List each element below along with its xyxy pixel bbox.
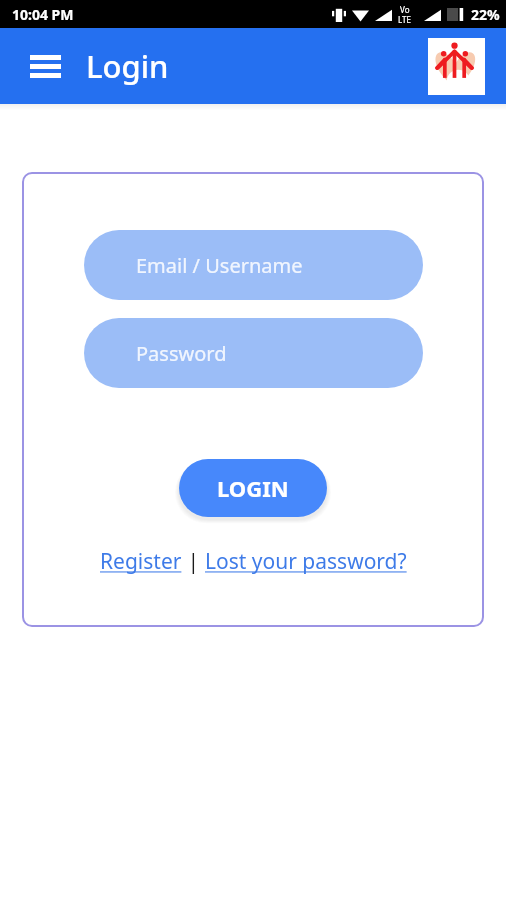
staticText: 22%	[471, 5, 500, 24]
staticText: |	[182, 547, 205, 576]
button[interactable]: LOGIN	[179, 459, 327, 517]
staticText: 10:04 PM	[12, 5, 74, 24]
button[interactable]: Password	[84, 318, 423, 388]
staticText: LOGIN	[217, 473, 289, 503]
staticText: LTE	[398, 14, 411, 25]
button[interactable]: Lost your password?	[205, 547, 407, 576]
button[interactable]: Open navigation menu	[22, 43, 68, 89]
button[interactable]: Email / Username	[84, 230, 423, 300]
button[interactable]: Register	[100, 547, 182, 576]
button[interactable]: App logo	[428, 38, 485, 95]
staticText: Vo	[400, 4, 410, 15]
staticText: Email / Username	[136, 252, 303, 279]
staticText: Login	[86, 45, 169, 87]
staticText: Password	[136, 340, 227, 367]
